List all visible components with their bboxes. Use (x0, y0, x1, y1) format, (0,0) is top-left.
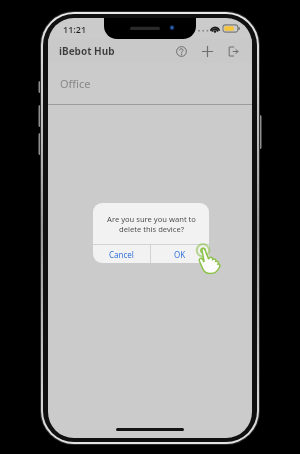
staticText: OK (174, 249, 186, 260)
staticText: Cancel (109, 249, 134, 260)
button[interactable]: OK (151, 245, 209, 263)
button[interactable]: Add device (197, 41, 217, 61)
button[interactable]: Log out (223, 41, 243, 61)
staticText: iBebot Hub (59, 44, 115, 58)
button[interactable]: Cancel (93, 245, 150, 263)
staticText: Are you sure you want to delete this dev… (107, 214, 196, 234)
button[interactable]: Help (171, 41, 191, 61)
staticText: Office (60, 76, 91, 91)
staticText: 11:21 (63, 23, 87, 35)
